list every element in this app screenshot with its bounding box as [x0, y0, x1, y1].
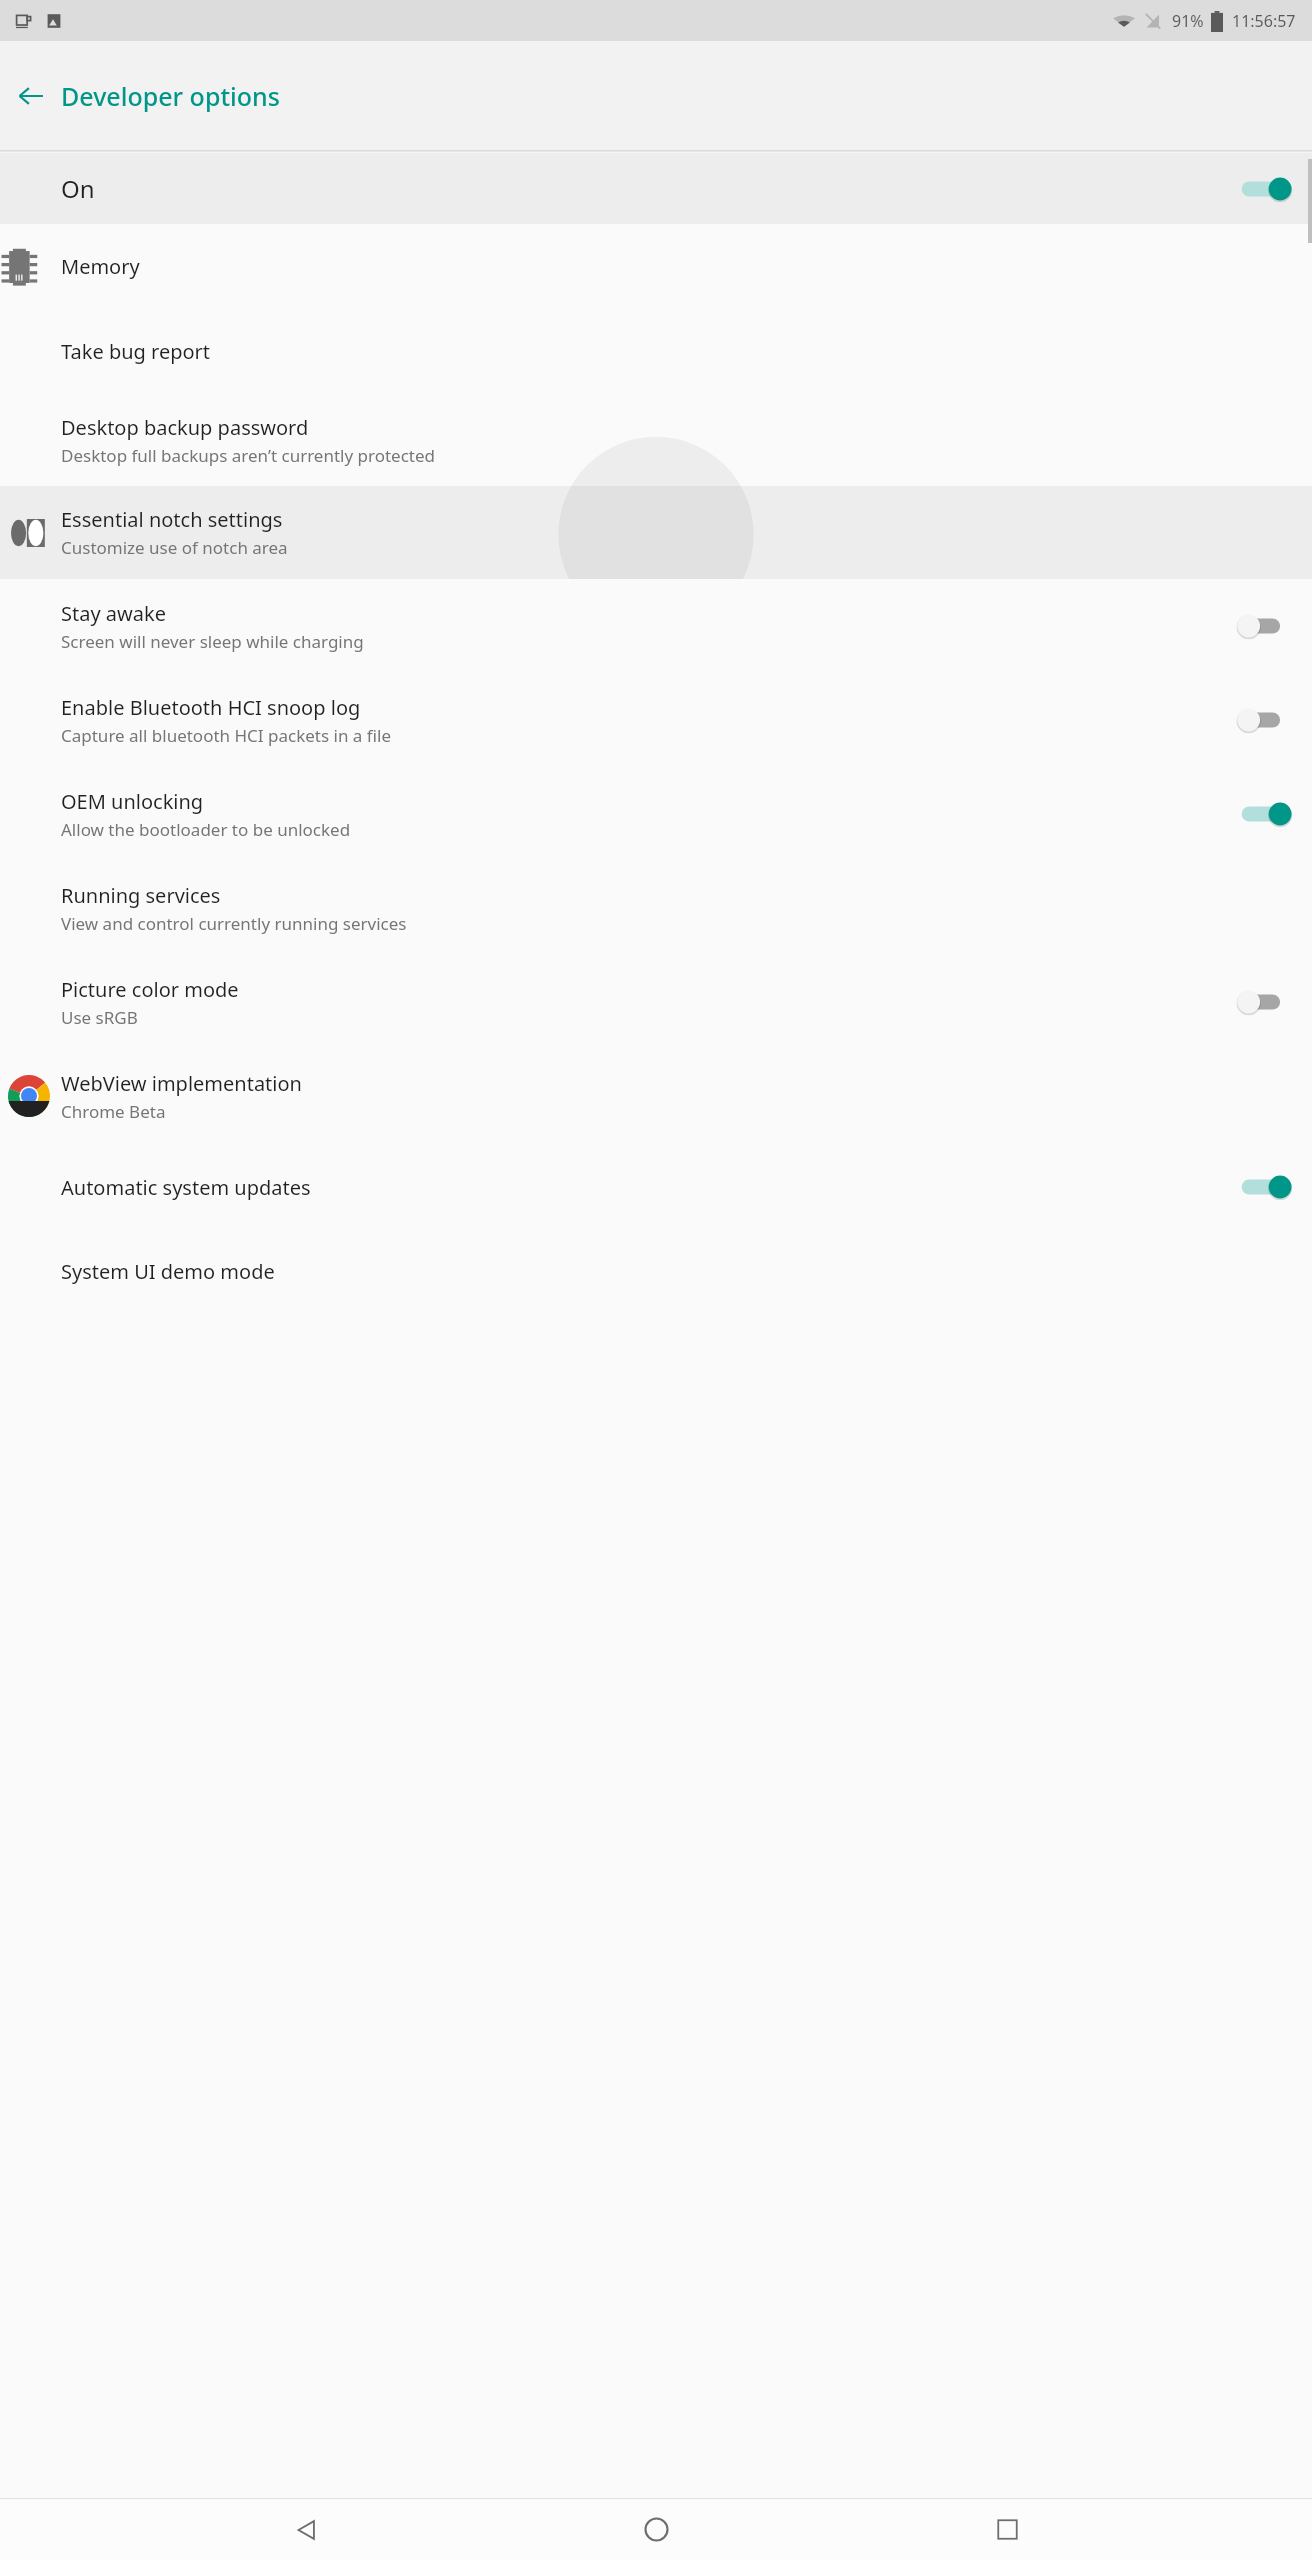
button[interactable]: Back: [7, 72, 55, 120]
button[interactable]: Essential notch settings: [0, 486, 1312, 579]
staticText: Allow the bootloader to be unlocked: [61, 818, 351, 841]
staticText: Customize use of notch area: [61, 536, 288, 559]
button[interactable]: Home: [611, 2499, 701, 2560]
button[interactable]: System UI demo mode: [0, 1231, 1312, 1311]
button[interactable]: Stay awake: [0, 579, 1312, 673]
button[interactable]: Automatic system updates: [0, 1143, 1312, 1231]
button[interactable]: Switch on: [1238, 797, 1290, 831]
button[interactable]: Switch off: [1238, 609, 1290, 643]
staticText: Chrome Beta: [61, 1100, 166, 1123]
button[interactable]: Switch on: [1238, 1170, 1290, 1204]
staticText: Desktop full backups aren’t currently pr…: [61, 444, 436, 467]
button[interactable]: Running services: [0, 861, 1312, 955]
button[interactable]: Memory: [0, 224, 1312, 309]
staticText: Memory: [61, 253, 140, 280]
staticText: On: [61, 172, 95, 205]
staticText: Developer options: [61, 79, 280, 113]
button[interactable]: Switch off: [1238, 703, 1290, 737]
button[interactable]: OEM unlocking: [0, 767, 1312, 861]
button[interactable]: WebView implementation: [0, 1049, 1312, 1143]
staticText: View and control currently running servi…: [61, 912, 407, 935]
staticText: Picture color mode: [61, 976, 239, 1003]
staticText: Automatic system updates: [61, 1174, 311, 1201]
staticText: Capture all bluetooth HCI packets in a f…: [61, 724, 392, 747]
button[interactable]: Recent apps: [962, 2499, 1052, 2560]
staticText: Enable Bluetooth HCI snoop log: [61, 694, 361, 721]
staticText: 11:56:57: [1232, 10, 1296, 32]
button[interactable]: Enable Bluetooth HCI snoop log: [0, 673, 1312, 767]
button[interactable]: Switch on: [1238, 172, 1290, 206]
staticText: OEM unlocking: [61, 788, 204, 815]
staticText: Running services: [61, 882, 221, 909]
button[interactable]: Desktop backup password: [0, 394, 1312, 486]
staticText: WebView implementation: [61, 1070, 302, 1097]
staticText: 91%: [1172, 10, 1204, 32]
staticText: Take bug report: [61, 338, 211, 365]
staticText: Desktop backup password: [61, 414, 309, 441]
button[interactable]: Switch off: [1238, 985, 1290, 1019]
button[interactable]: On: [0, 153, 1312, 224]
button[interactable]: Take bug report: [0, 309, 1312, 394]
button[interactable]: Back: [261, 2499, 351, 2560]
staticText: Use sRGB: [61, 1006, 138, 1029]
staticText: Essential notch settings: [61, 506, 283, 533]
staticText: Screen will never sleep while charging: [61, 630, 364, 653]
staticText: System UI demo mode: [61, 1258, 275, 1285]
button[interactable]: Picture color mode: [0, 955, 1312, 1049]
staticText: Stay awake: [61, 600, 166, 627]
